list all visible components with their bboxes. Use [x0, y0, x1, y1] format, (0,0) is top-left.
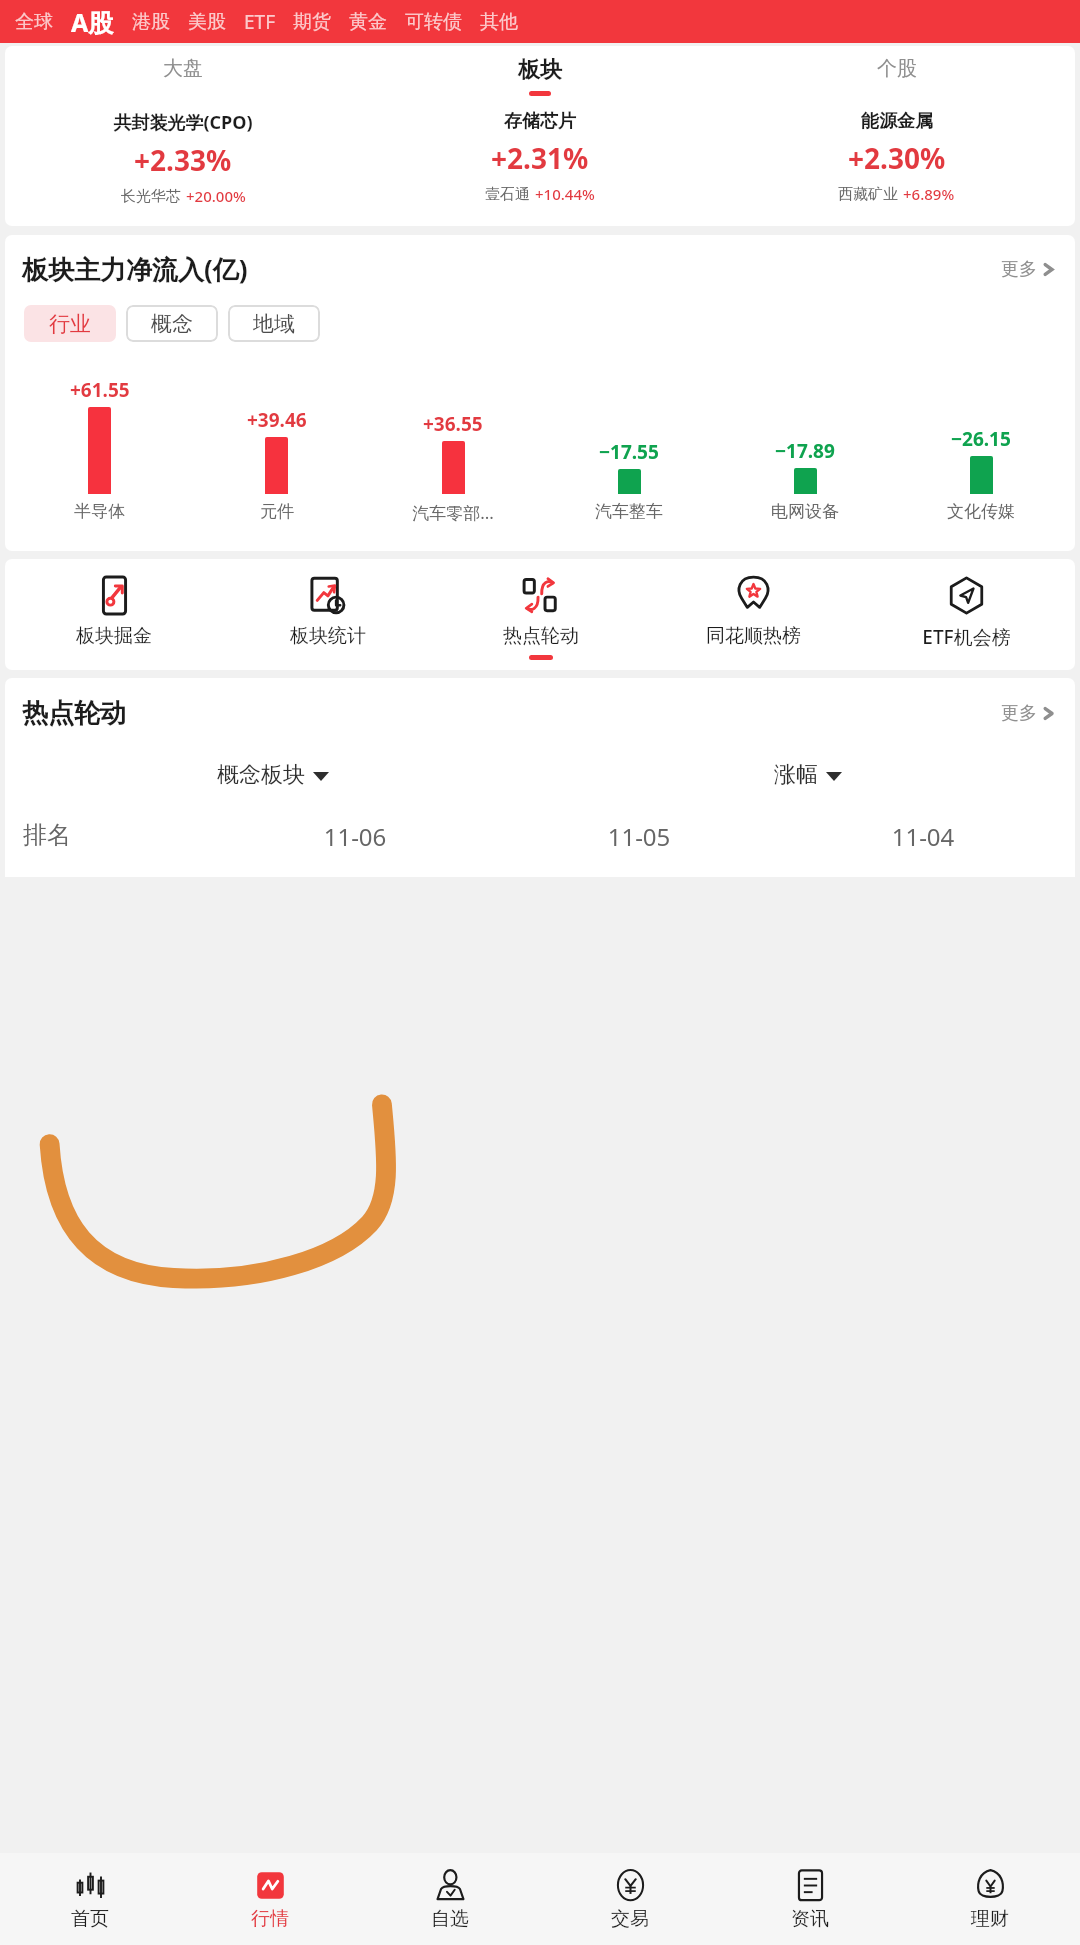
- staticText: 同花顺热榜: [706, 624, 801, 648]
- button[interactable]: 概念板块: [213, 757, 333, 793]
- staticText: −26.15: [951, 426, 1011, 452]
- button[interactable]: 首页: [0, 1868, 180, 1931]
- staticText: 板块统计: [290, 624, 366, 648]
- button[interactable]: A股: [62, 1, 123, 43]
- staticText: 期货: [293, 10, 331, 34]
- staticText: ETF: [244, 9, 275, 35]
- staticText: 港股: [132, 10, 170, 34]
- staticText: 能源金属: [861, 110, 933, 133]
- staticText: 板块主力净流入(亿): [22, 251, 248, 287]
- staticText: 行业: [49, 311, 91, 337]
- button[interactable]: 能源金属: [718, 110, 1075, 204]
- other: 板块掘金: [94, 575, 135, 616]
- button[interactable]: 涨幅: [770, 757, 846, 793]
- other: 板块统计: [307, 575, 348, 616]
- button[interactable]: 期货: [284, 6, 340, 38]
- button[interactable]: +36.55: [365, 411, 541, 494]
- button[interactable]: 理财: [900, 1868, 1080, 1931]
- button[interactable]: 美股: [179, 6, 235, 38]
- staticText: 交易: [611, 1907, 649, 1931]
- button[interactable]: 更多: [997, 254, 1058, 285]
- button[interactable]: 地域: [228, 305, 320, 342]
- button[interactable]: 存储芯片: [361, 110, 718, 204]
- button[interactable]: −26.15: [893, 426, 1069, 494]
- staticText: 自选: [431, 1907, 469, 1931]
- button[interactable]: 大盘: [5, 56, 361, 93]
- button[interactable]: 板块: [361, 56, 718, 96]
- button[interactable]: 黄金: [340, 6, 396, 38]
- staticText: +2.33%: [134, 141, 232, 179]
- staticText: 11-04: [781, 820, 1065, 853]
- staticText: 全球: [15, 10, 53, 34]
- button[interactable]: 全球: [6, 6, 62, 38]
- staticText: 大盘: [163, 56, 203, 81]
- staticText: ETF机会榜: [922, 624, 1011, 650]
- button[interactable]: 概念: [126, 305, 218, 342]
- staticText: 资讯: [791, 1907, 829, 1931]
- staticText: +10.44%: [535, 184, 595, 204]
- button[interactable]: 交易: [540, 1868, 720, 1931]
- button[interactable]: ETF: [235, 5, 284, 39]
- staticText: 理财: [971, 1907, 1009, 1931]
- button[interactable]: 可转债: [396, 6, 471, 38]
- staticText: 个股: [877, 56, 917, 81]
- button[interactable]: 港股: [123, 6, 179, 38]
- staticText: 长光华芯: [121, 187, 181, 206]
- staticText: 美股: [188, 10, 226, 34]
- staticText: 11-05: [497, 820, 781, 853]
- staticText: 壹石通: [485, 185, 530, 204]
- staticText: 板块: [518, 56, 562, 84]
- staticText: +20.00%: [186, 186, 246, 206]
- staticText: 可转债: [405, 10, 462, 34]
- button[interactable]: 更多: [997, 698, 1058, 729]
- staticText: 地域: [253, 311, 295, 337]
- staticText: 共封装光学(CPO): [113, 110, 253, 135]
- staticText: −17.89: [775, 438, 835, 464]
- staticText: 西藏矿业: [838, 185, 898, 204]
- other: 同花顺热榜: [733, 575, 774, 616]
- staticText: 概念板块: [217, 761, 305, 789]
- staticText: 涨幅: [774, 761, 818, 789]
- staticText: 存储芯片: [504, 110, 576, 133]
- staticText: 文化传媒: [947, 501, 1015, 522]
- staticText: 元件: [260, 501, 294, 522]
- button[interactable]: ETF机会榜: [860, 572, 1073, 665]
- button[interactable]: 行业: [24, 305, 116, 342]
- other: 热点轮动: [520, 575, 561, 616]
- button[interactable]: 共封装光学(CPO): [5, 110, 361, 206]
- button[interactable]: 板块掘金: [7, 572, 221, 663]
- button[interactable]: 热点轮动: [434, 572, 647, 663]
- button[interactable]: −17.55: [541, 439, 717, 494]
- staticText: 板块掘金: [76, 624, 152, 648]
- staticText: 概念: [151, 311, 193, 337]
- staticText: 排名: [23, 820, 213, 850]
- button[interactable]: 板块统计: [221, 572, 434, 663]
- staticText: 电网设备: [771, 501, 839, 522]
- staticText: +61.55: [70, 377, 130, 403]
- staticText: +2.31%: [491, 139, 589, 177]
- button[interactable]: 自选: [360, 1868, 540, 1931]
- button[interactable]: −17.89: [717, 438, 893, 494]
- button[interactable]: 资讯: [720, 1868, 900, 1931]
- staticText: 热点轮动: [22, 697, 126, 730]
- other: ETF机会榜: [946, 575, 987, 616]
- staticText: +2.30%: [848, 139, 946, 177]
- button[interactable]: 同花顺热榜: [647, 572, 860, 663]
- button[interactable]: 其他: [471, 6, 527, 38]
- staticText: +36.55: [423, 411, 483, 437]
- staticText: −17.55: [599, 439, 659, 465]
- staticText: 首页: [71, 1907, 109, 1931]
- staticText: 汽车零部...: [412, 501, 494, 524]
- button[interactable]: +61.55: [11, 377, 188, 494]
- button[interactable]: 个股: [718, 56, 1075, 93]
- staticText: +39.46: [247, 407, 307, 433]
- staticText: 汽车整车: [595, 501, 663, 522]
- staticText: 更多: [1001, 258, 1037, 281]
- button[interactable]: 行情: [180, 1868, 360, 1931]
- staticText: 更多: [1001, 702, 1037, 725]
- staticText: 热点轮动: [503, 624, 579, 648]
- staticText: 半导体: [74, 501, 125, 522]
- staticText: 其他: [480, 10, 518, 34]
- staticText: 黄金: [349, 10, 387, 34]
- button[interactable]: +39.46: [188, 407, 365, 494]
